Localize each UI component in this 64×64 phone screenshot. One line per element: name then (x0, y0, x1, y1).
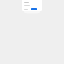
button[interactable]: Cancel (24, 8, 29, 10)
button[interactable]: Submit (31, 8, 37, 10)
button[interactable]: Cancel (22, 0, 42, 11)
